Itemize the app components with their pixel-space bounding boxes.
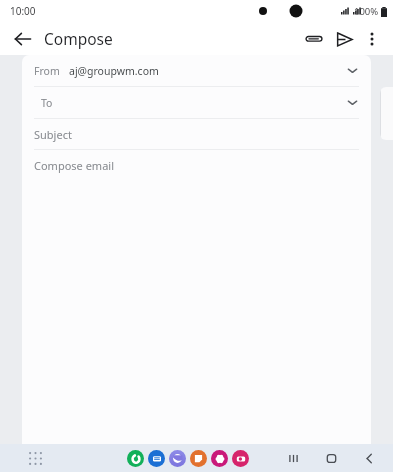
staticText: 100% [354, 5, 379, 18]
button[interactable]: Gallery [211, 450, 228, 467]
button[interactable]: To [22, 87, 371, 118]
button[interactable]: Notes [190, 450, 207, 467]
staticText: Subject [34, 127, 72, 142]
button[interactable]: Subject [22, 119, 371, 149]
button[interactable]: Send [329, 24, 359, 54]
button[interactable]: Attach file [299, 24, 329, 54]
button[interactable]: Compose email [22, 150, 371, 180]
button[interactable]: Camera [232, 450, 249, 467]
button[interactable]: Back [8, 24, 38, 54]
button[interactable]: Back [359, 448, 379, 468]
button[interactable]: More options [359, 26, 385, 52]
button[interactable]: Messages [148, 450, 165, 467]
button[interactable]: Recents [283, 448, 303, 468]
staticText: Compose email [34, 158, 114, 173]
staticText: Compose [44, 28, 113, 49]
staticText: 10:00 [10, 4, 36, 18]
staticText: aj@groupwm.com [69, 64, 159, 78]
button[interactable]: Phone [127, 450, 144, 467]
staticText: From [34, 64, 60, 78]
staticText: To [41, 96, 53, 110]
button[interactable]: Edge panel [380, 87, 393, 140]
button[interactable]: Home [321, 448, 341, 468]
button[interactable]: From [22, 55, 371, 86]
button[interactable]: Apps [25, 448, 45, 468]
button[interactable]: Internet [169, 450, 186, 467]
